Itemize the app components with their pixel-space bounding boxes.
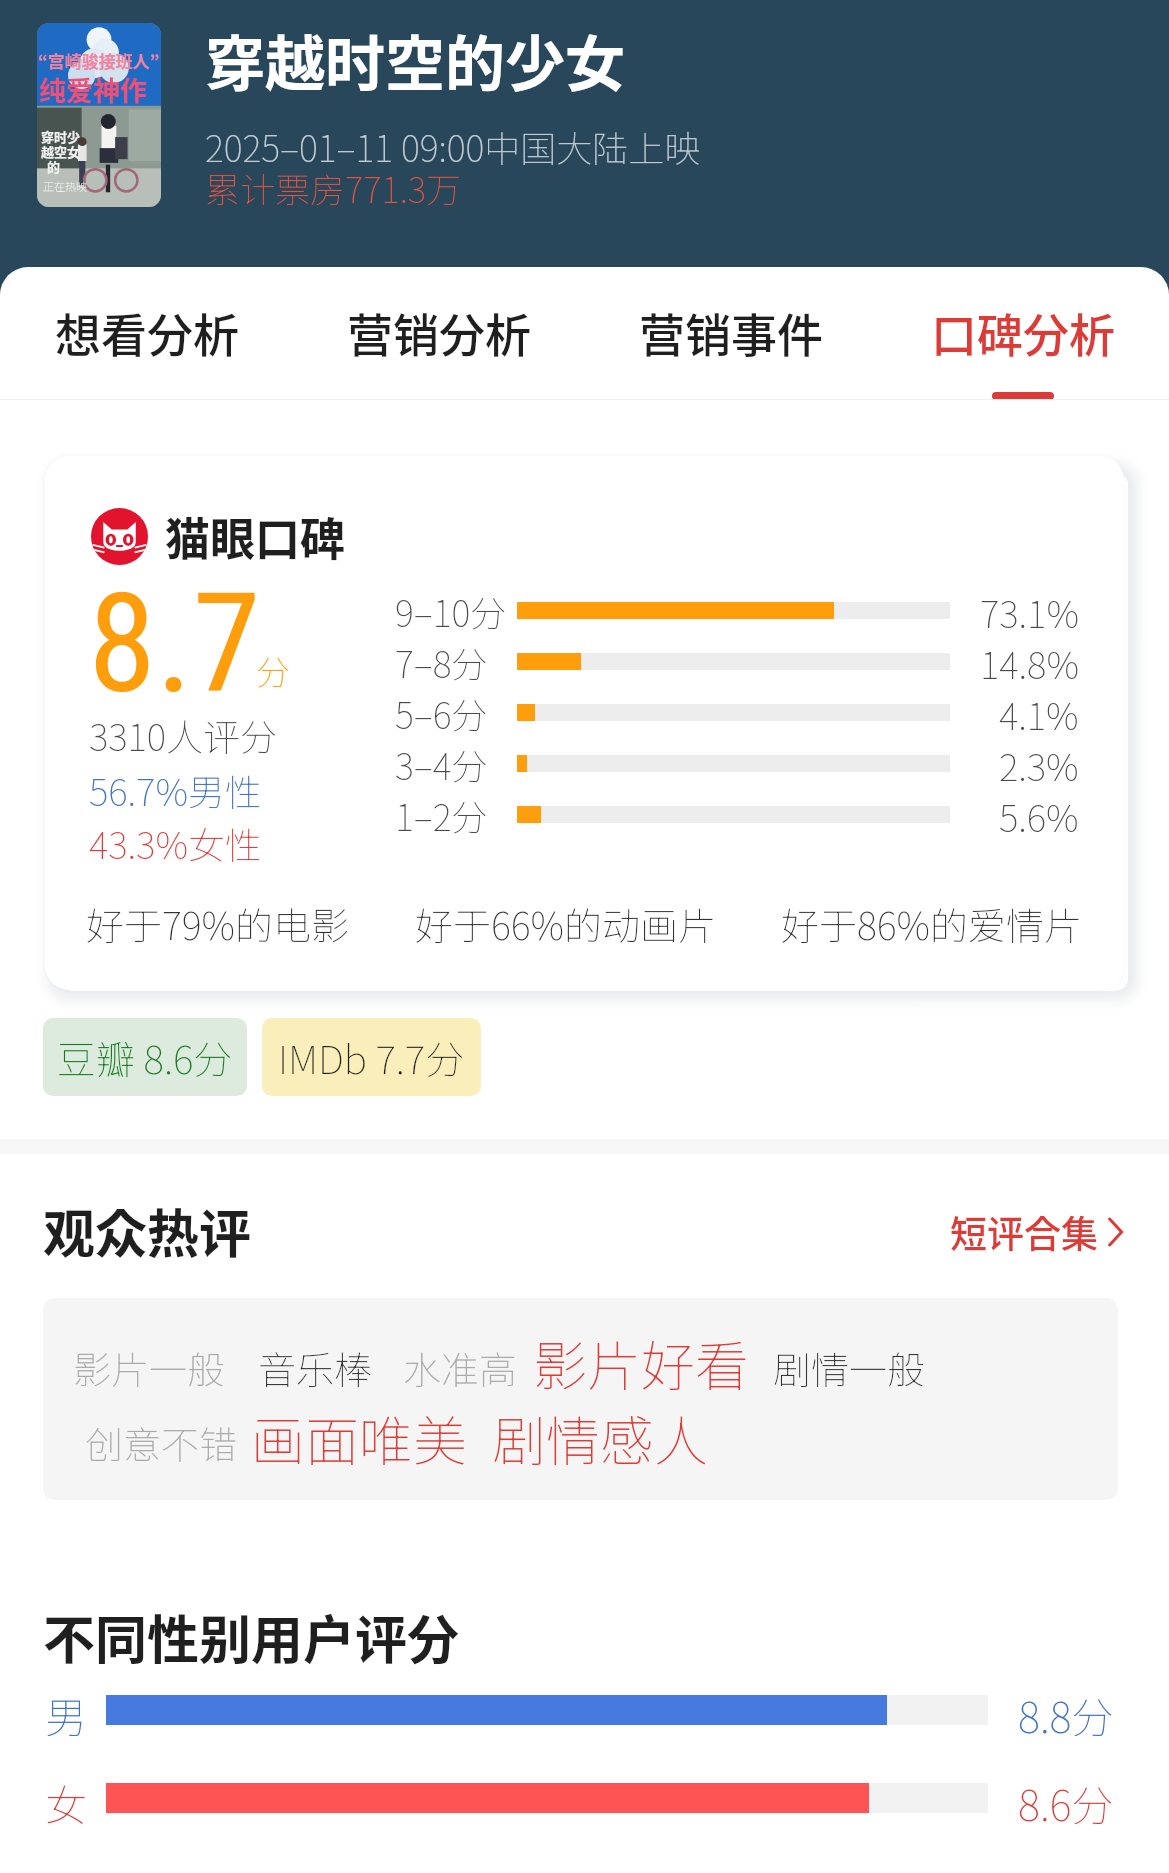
staticText: 4.1%	[999, 687, 1079, 738]
staticText: 穿时少 越空女 的	[41, 127, 81, 176]
staticText: 3310人评分	[89, 708, 278, 762]
button[interactable]: 男	[0, 1684, 1169, 1736]
staticText: 43.3%女性	[89, 816, 262, 870]
staticText: 纯爱神作	[39, 70, 147, 109]
staticText: 3–4分	[395, 738, 517, 789]
staticText: 好于79%的电影	[86, 896, 350, 951]
staticText: 想看分析	[55, 299, 239, 366]
staticText: 8.7	[88, 563, 261, 725]
staticText: 剧情感人	[492, 1398, 708, 1476]
staticText: 9–10分	[395, 585, 517, 636]
staticText: 营销事件	[639, 299, 823, 366]
staticText: 男	[45, 1684, 88, 1736]
button[interactable]: 影片一般	[43, 1298, 1118, 1500]
staticText: 7–8分	[395, 636, 517, 687]
staticText: 累计票房771.3万	[205, 162, 462, 213]
staticText: 影片一般	[73, 1340, 226, 1395]
button[interactable]: 女	[0, 1772, 1169, 1824]
staticText: 5–6分	[395, 687, 517, 738]
staticText: 正在热映	[43, 178, 87, 194]
staticText: IMDb 7.7分	[278, 1029, 465, 1085]
button[interactable]: 营销事件	[585, 267, 877, 400]
staticText: 画面唯美	[251, 1398, 467, 1476]
staticText: 14.8%	[980, 636, 1079, 687]
staticText: “宫崎骏接班人”	[38, 48, 160, 73]
button[interactable]	[190, 10, 1150, 210]
staticText: 2.3%	[999, 738, 1079, 789]
staticText: 2025–01–11 09:00中国大陆上映	[205, 120, 701, 172]
button[interactable]: IMDb 7.7分	[262, 1018, 481, 1096]
staticText: 73.1%	[980, 585, 1079, 636]
staticText: 女	[45, 1772, 88, 1824]
staticText: 营销分析	[347, 299, 531, 366]
staticText: 创意不错	[85, 1415, 238, 1470]
staticText: 8.6分	[1018, 1772, 1114, 1824]
button[interactable]: Movie poster	[37, 23, 161, 207]
staticText: 观众热评	[43, 1193, 252, 1268]
button[interactable]: 豆瓣 8.6分	[43, 1018, 247, 1096]
button[interactable]: 想看分析	[0, 267, 293, 400]
button[interactable]: 营销分析	[293, 267, 585, 400]
staticText: 5.6%	[999, 789, 1079, 840]
staticText: 分	[256, 646, 290, 695]
button[interactable]: 口碑分析	[877, 267, 1169, 400]
staticText: 好于66%的动画片	[415, 896, 717, 951]
staticText: 影片好看	[533, 1323, 749, 1401]
staticText: 1–2分	[395, 789, 517, 840]
staticText: 音乐棒	[258, 1340, 373, 1395]
staticText: 剧情一般	[773, 1340, 926, 1395]
staticText: 水准高	[403, 1340, 518, 1395]
staticText: 不同性别用户评分	[43, 1599, 460, 1674]
button[interactable]: 短评合集	[950, 1205, 1124, 1259]
staticText: 短评合集	[950, 1205, 1098, 1259]
staticText: 56.7%男性	[89, 763, 262, 817]
staticText: 好于86%的爱情片	[781, 896, 1083, 951]
staticText: 猫眼口碑	[165, 504, 346, 569]
staticText: 穿越时空的少女	[205, 16, 625, 103]
staticText: 口碑分析	[931, 299, 1115, 366]
staticText: 8.8分	[1018, 1684, 1114, 1736]
staticText: 豆瓣 8.6分	[57, 1029, 233, 1085]
